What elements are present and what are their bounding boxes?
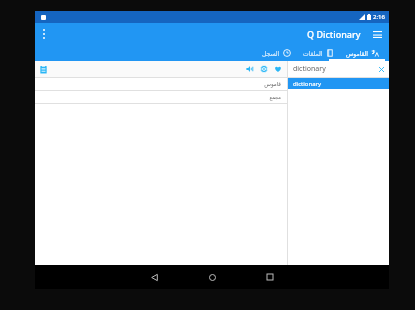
staticText: السجل bbox=[262, 50, 280, 57]
staticText: dictionary bbox=[293, 64, 326, 74]
button[interactable]: الملفات bbox=[297, 45, 340, 61]
button[interactable]: Clear bbox=[375, 63, 387, 75]
staticText: قاموس bbox=[264, 81, 281, 87]
button[interactable]: Favourite bbox=[271, 62, 285, 76]
staticText: الملفات bbox=[303, 50, 323, 57]
button[interactable]: Translate online bbox=[257, 62, 271, 76]
button[interactable]: قاموس bbox=[35, 78, 287, 90]
button[interactable]: Speak bbox=[243, 62, 257, 76]
button[interactable]: Word list bbox=[35, 61, 51, 77]
button[interactable]: مجمع bbox=[35, 91, 287, 103]
staticText: 2:16 bbox=[373, 13, 385, 21]
button[interactable]: dictionary bbox=[288, 78, 389, 89]
button[interactable]: القاموس bbox=[340, 45, 385, 61]
staticText: dictionary bbox=[293, 80, 322, 88]
button[interactable]: Recent apps bbox=[255, 265, 285, 289]
staticText: مجمع bbox=[269, 94, 281, 100]
button[interactable]: More options bbox=[35, 25, 53, 43]
button[interactable]: السجل bbox=[256, 45, 297, 61]
staticText: القاموس bbox=[346, 50, 368, 57]
button[interactable]: Menu bbox=[369, 26, 385, 42]
button[interactable]: dictionary bbox=[288, 61, 389, 77]
button[interactable]: Home bbox=[197, 265, 227, 289]
button[interactable]: Back bbox=[139, 265, 169, 289]
button[interactable]: Q Dictionary bbox=[307, 28, 361, 40]
